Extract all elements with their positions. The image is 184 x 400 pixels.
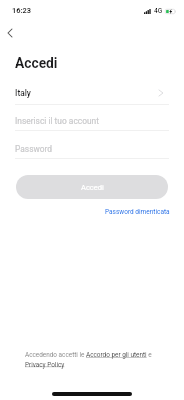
button[interactable]: Accedi (16, 175, 168, 199)
button[interactable]: Italy (0, 81, 184, 104)
staticText: Accedi (15, 55, 58, 71)
button[interactable]: Inserisci il tuo account (15, 116, 99, 126)
button[interactable]: Password dimenticata (105, 208, 170, 216)
staticText: Password dimenticata (105, 208, 170, 216)
staticText: Accedi (81, 183, 104, 192)
staticText: Italy (15, 88, 31, 98)
staticText: 4G (154, 7, 163, 15)
staticText: Accedendo accetti le Accordo per gli ute… (25, 351, 159, 368)
staticText: 16:23 (12, 6, 32, 15)
button[interactable]: Back (0, 22, 21, 44)
button[interactable]: Password (15, 144, 53, 154)
